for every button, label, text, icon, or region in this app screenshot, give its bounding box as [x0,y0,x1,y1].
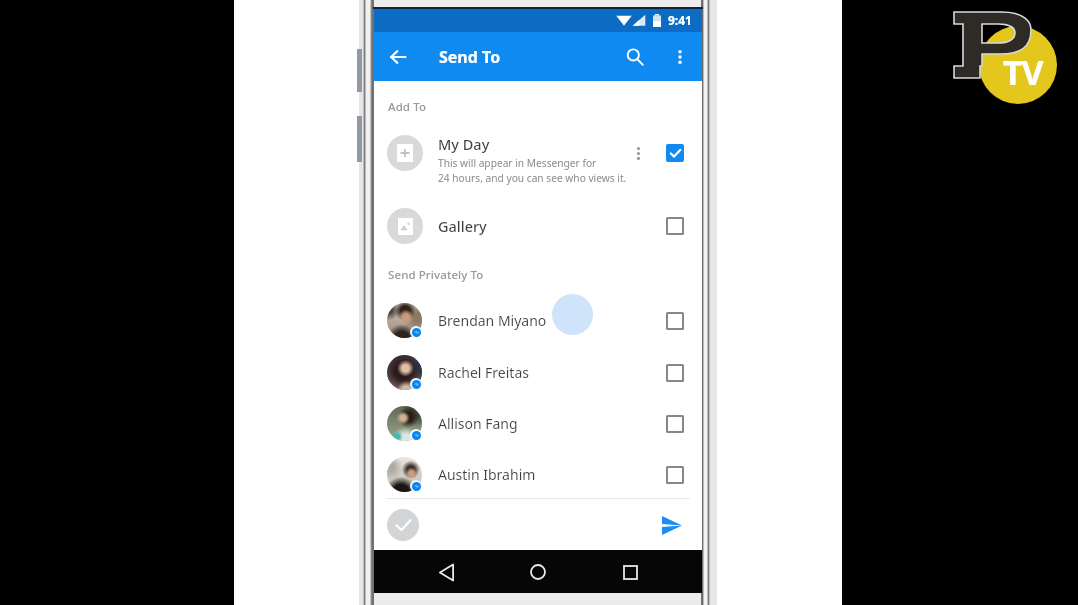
staticText: Gallery [438,216,661,236]
button[interactable]: My Day options [627,142,649,164]
staticText: Send To [439,46,501,68]
staticText: 24 hours, and you can see who views it. [438,171,627,185]
button[interactable]: Back [377,36,419,78]
staticText: TV [1003,49,1043,95]
button[interactable]: Send [655,508,689,542]
button[interactable]: Search [613,35,657,79]
staticText: Rachel Freitas [438,363,661,382]
button[interactable]: Recent apps [613,555,647,589]
staticText: Allison Fang [438,414,661,433]
button[interactable]: Austin Ibrahim [374,449,702,500]
button[interactable]: Brendan Miyano [374,295,702,346]
button[interactable]: My Day [374,121,702,185]
staticText: Add To [388,99,427,115]
staticText: 9:41 [668,12,692,28]
button[interactable]: Not selected [661,461,689,489]
button[interactable]: Allison Fang [374,398,702,449]
button[interactable]: Not selected [661,359,689,387]
button[interactable]: Not selected [661,212,689,240]
staticText: Brendan Miyano [438,311,661,330]
button[interactable]: Back [429,555,463,589]
staticText: Send Privately To [388,267,484,283]
button[interactable]: Not selected [661,307,689,335]
button[interactable]: More options [661,38,699,76]
button[interactable]: Gallery [374,200,702,252]
staticText: This will appear in Messenger for [438,156,597,170]
button[interactable]: Rachel Freitas [374,347,702,398]
button[interactable]: Confirm selection [387,509,419,541]
button[interactable]: Selected [661,139,689,167]
staticText: My Day [438,134,490,154]
button[interactable]: Home [521,555,555,589]
button[interactable]: Not selected [661,410,689,438]
staticText: Austin Ibrahim [438,465,661,484]
